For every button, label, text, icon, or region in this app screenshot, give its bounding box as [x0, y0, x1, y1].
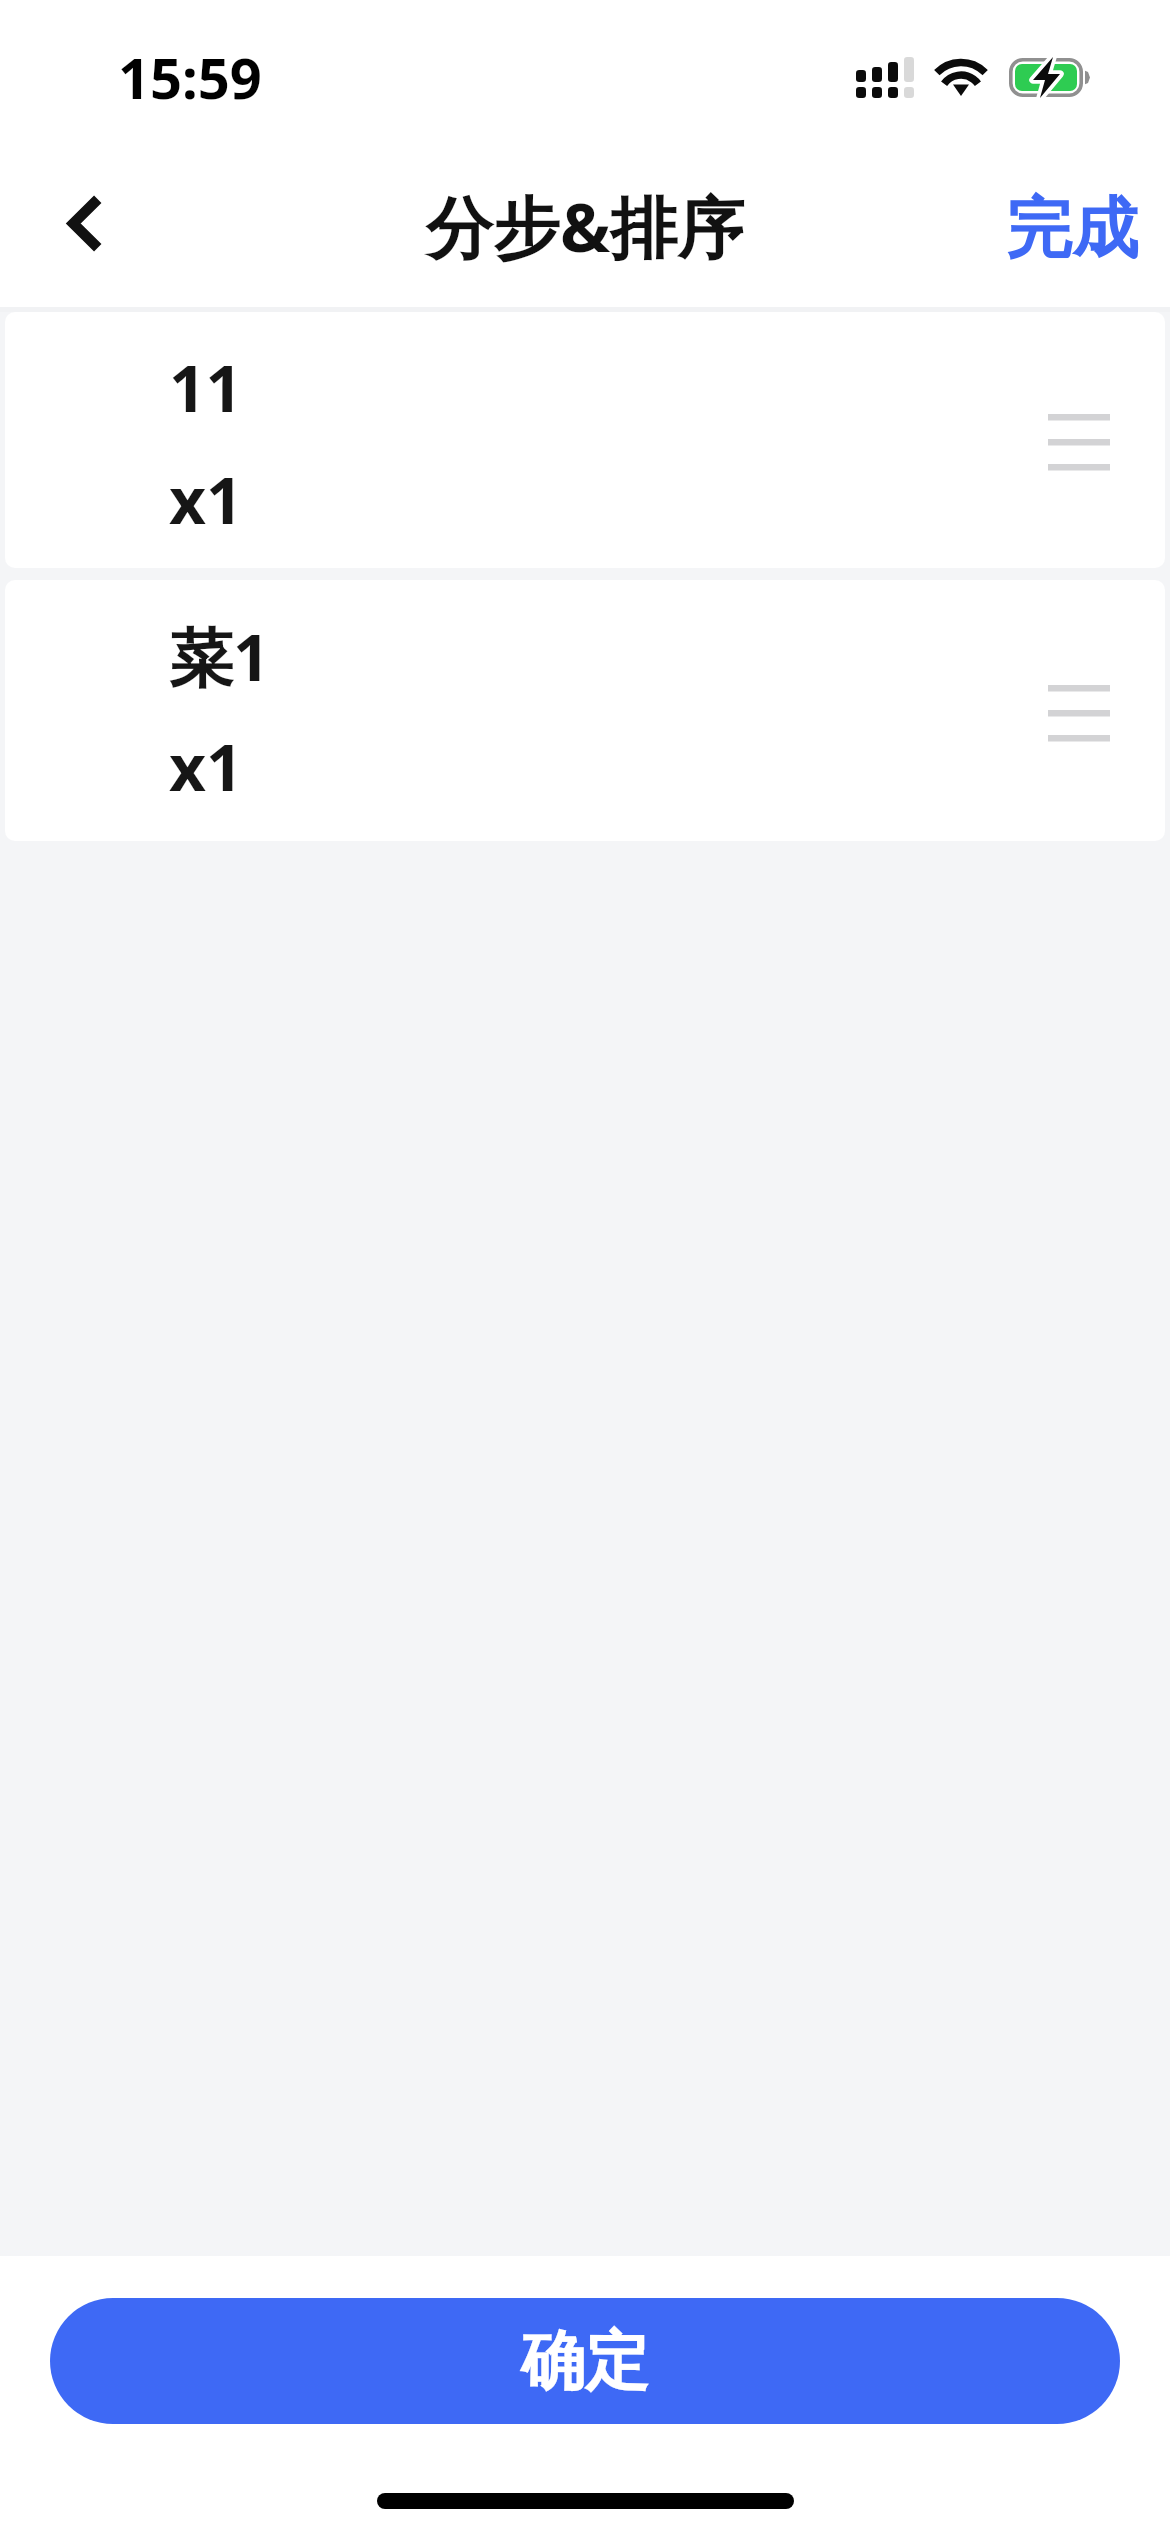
button[interactable]: 11 [5, 312, 1165, 568]
staticText: 菜1 [169, 613, 270, 700]
staticText: 分步&排序 [426, 180, 745, 272]
button[interactable]: Reorder [1029, 661, 1129, 761]
staticText: 15:59 [118, 39, 262, 115]
staticText: x1 [169, 723, 243, 810]
staticText: 确定 [521, 2321, 649, 2402]
button[interactable]: 确定 [50, 2298, 1120, 2424]
button[interactable]: Reorder [1029, 390, 1129, 490]
button[interactable]: 完成 [966, 165, 1170, 292]
button[interactable]: 菜1 [5, 580, 1165, 841]
staticText: 完成 [1006, 187, 1138, 270]
staticText: 11 [169, 344, 243, 431]
button[interactable]: Back [21, 159, 149, 287]
staticText: x1 [169, 456, 243, 543]
